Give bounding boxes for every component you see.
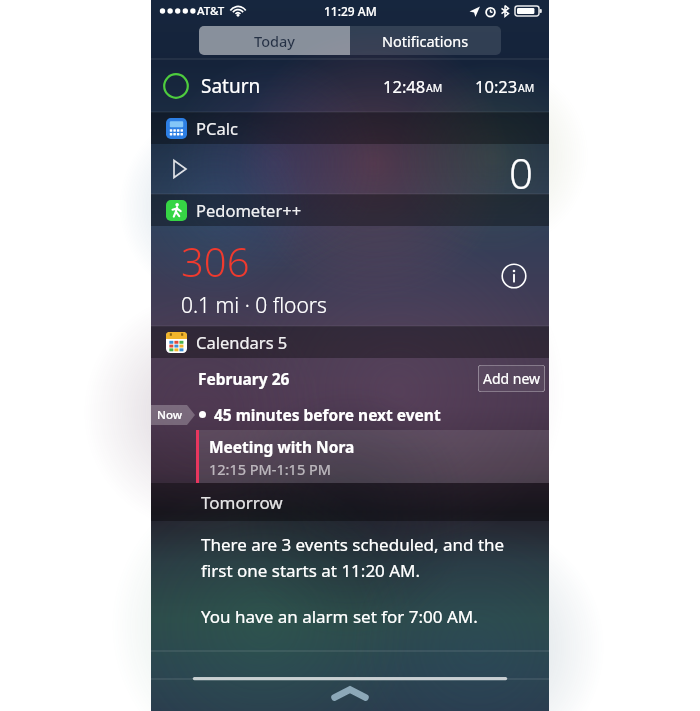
staticText: 11:29 AM bbox=[324, 3, 377, 19]
staticText: PCalc bbox=[196, 117, 238, 139]
button[interactable]: Today bbox=[199, 26, 350, 55]
button[interactable]: Saturn bbox=[151, 59, 549, 112]
staticText: Calendars 5 bbox=[196, 331, 288, 353]
staticText: There are 3 events scheduled, and the fi… bbox=[201, 533, 537, 582]
staticText: 12:15 PM-1:15 PM bbox=[209, 459, 331, 479]
button[interactable]: 0 bbox=[151, 144, 549, 194]
staticText: Add new bbox=[483, 369, 541, 388]
button[interactable]: Now bbox=[151, 399, 549, 430]
button[interactable]: Info bbox=[501, 263, 527, 289]
button[interactable]: Pedometer++ bbox=[151, 194, 549, 226]
staticText: 10:23 bbox=[475, 75, 518, 97]
staticText: Notifications bbox=[382, 31, 469, 51]
staticText: Tomorrow bbox=[201, 491, 283, 514]
button[interactable]: Meeting with Nora bbox=[196, 430, 549, 483]
staticText: 0.1 mi · 0 floors bbox=[181, 291, 327, 320]
staticText: 306 bbox=[181, 234, 250, 288]
staticText: February 26 bbox=[198, 368, 290, 389]
staticText: AT&T bbox=[197, 3, 225, 19]
button[interactable]: Close Notification Center bbox=[332, 687, 368, 700]
button[interactable]: Tomorrow bbox=[151, 483, 549, 521]
button[interactable]: Add new bbox=[478, 365, 545, 392]
staticText: 45 minutes before next event bbox=[214, 404, 441, 425]
staticText: Pedometer++ bbox=[196, 199, 302, 221]
staticText: Saturn bbox=[201, 73, 261, 99]
staticText: Now bbox=[157, 407, 183, 423]
staticText: Today bbox=[254, 31, 295, 51]
staticText: Meeting with Nora bbox=[209, 436, 355, 457]
button[interactable]: PCalc bbox=[151, 112, 549, 144]
staticText: 0 bbox=[509, 144, 533, 191]
staticText: AM bbox=[518, 81, 535, 95]
staticText: You have an alarm set for 7:00 AM. bbox=[201, 605, 478, 628]
button[interactable]: 306 bbox=[151, 226, 549, 326]
button[interactable]: Calendars 5 bbox=[151, 326, 549, 358]
staticText: 12:48 bbox=[383, 75, 426, 97]
staticText: AM bbox=[426, 81, 443, 95]
button[interactable]: Notifications bbox=[350, 26, 501, 55]
